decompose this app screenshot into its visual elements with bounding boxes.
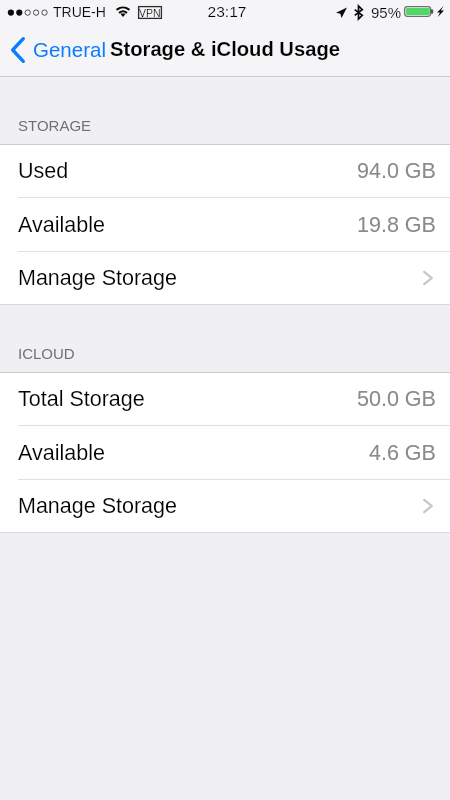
staticText: STORAGE bbox=[18, 117, 92, 134]
staticText: TRUE-H bbox=[53, 4, 106, 20]
other: Back bbox=[11, 37, 25, 63]
staticText: 23:17 bbox=[2, 3, 450, 20]
button[interactable]: Total Storage bbox=[0, 373, 450, 425]
staticText: Available bbox=[18, 213, 105, 237]
staticText: 94.0 GB bbox=[357, 159, 436, 183]
staticText: 4.6 GB bbox=[369, 441, 436, 465]
staticText: 95% bbox=[371, 4, 402, 21]
staticText: Available bbox=[18, 441, 105, 465]
other: Open bbox=[423, 270, 436, 286]
staticText: Storage & iCloud Usage bbox=[110, 38, 340, 61]
staticText: General bbox=[33, 38, 106, 61]
button[interactable]: Manage Storage bbox=[0, 252, 450, 304]
button[interactable]: Available bbox=[0, 426, 450, 479]
button[interactable]: Manage Storage bbox=[0, 480, 450, 532]
button[interactable]: Used bbox=[0, 145, 450, 197]
button[interactable]: Back bbox=[5, 35, 114, 65]
staticText: 50.0 GB bbox=[357, 387, 436, 411]
staticText: Manage Storage bbox=[18, 266, 177, 290]
staticText: Used bbox=[18, 159, 69, 183]
staticText: ICLOUD bbox=[18, 345, 75, 362]
other: Open bbox=[423, 498, 436, 514]
staticText: Total Storage bbox=[18, 387, 145, 411]
staticText: Manage Storage bbox=[18, 494, 177, 518]
button[interactable]: Available bbox=[0, 198, 450, 251]
staticText: 19.8 GB bbox=[357, 213, 436, 237]
staticText: VPN bbox=[139, 7, 161, 19]
